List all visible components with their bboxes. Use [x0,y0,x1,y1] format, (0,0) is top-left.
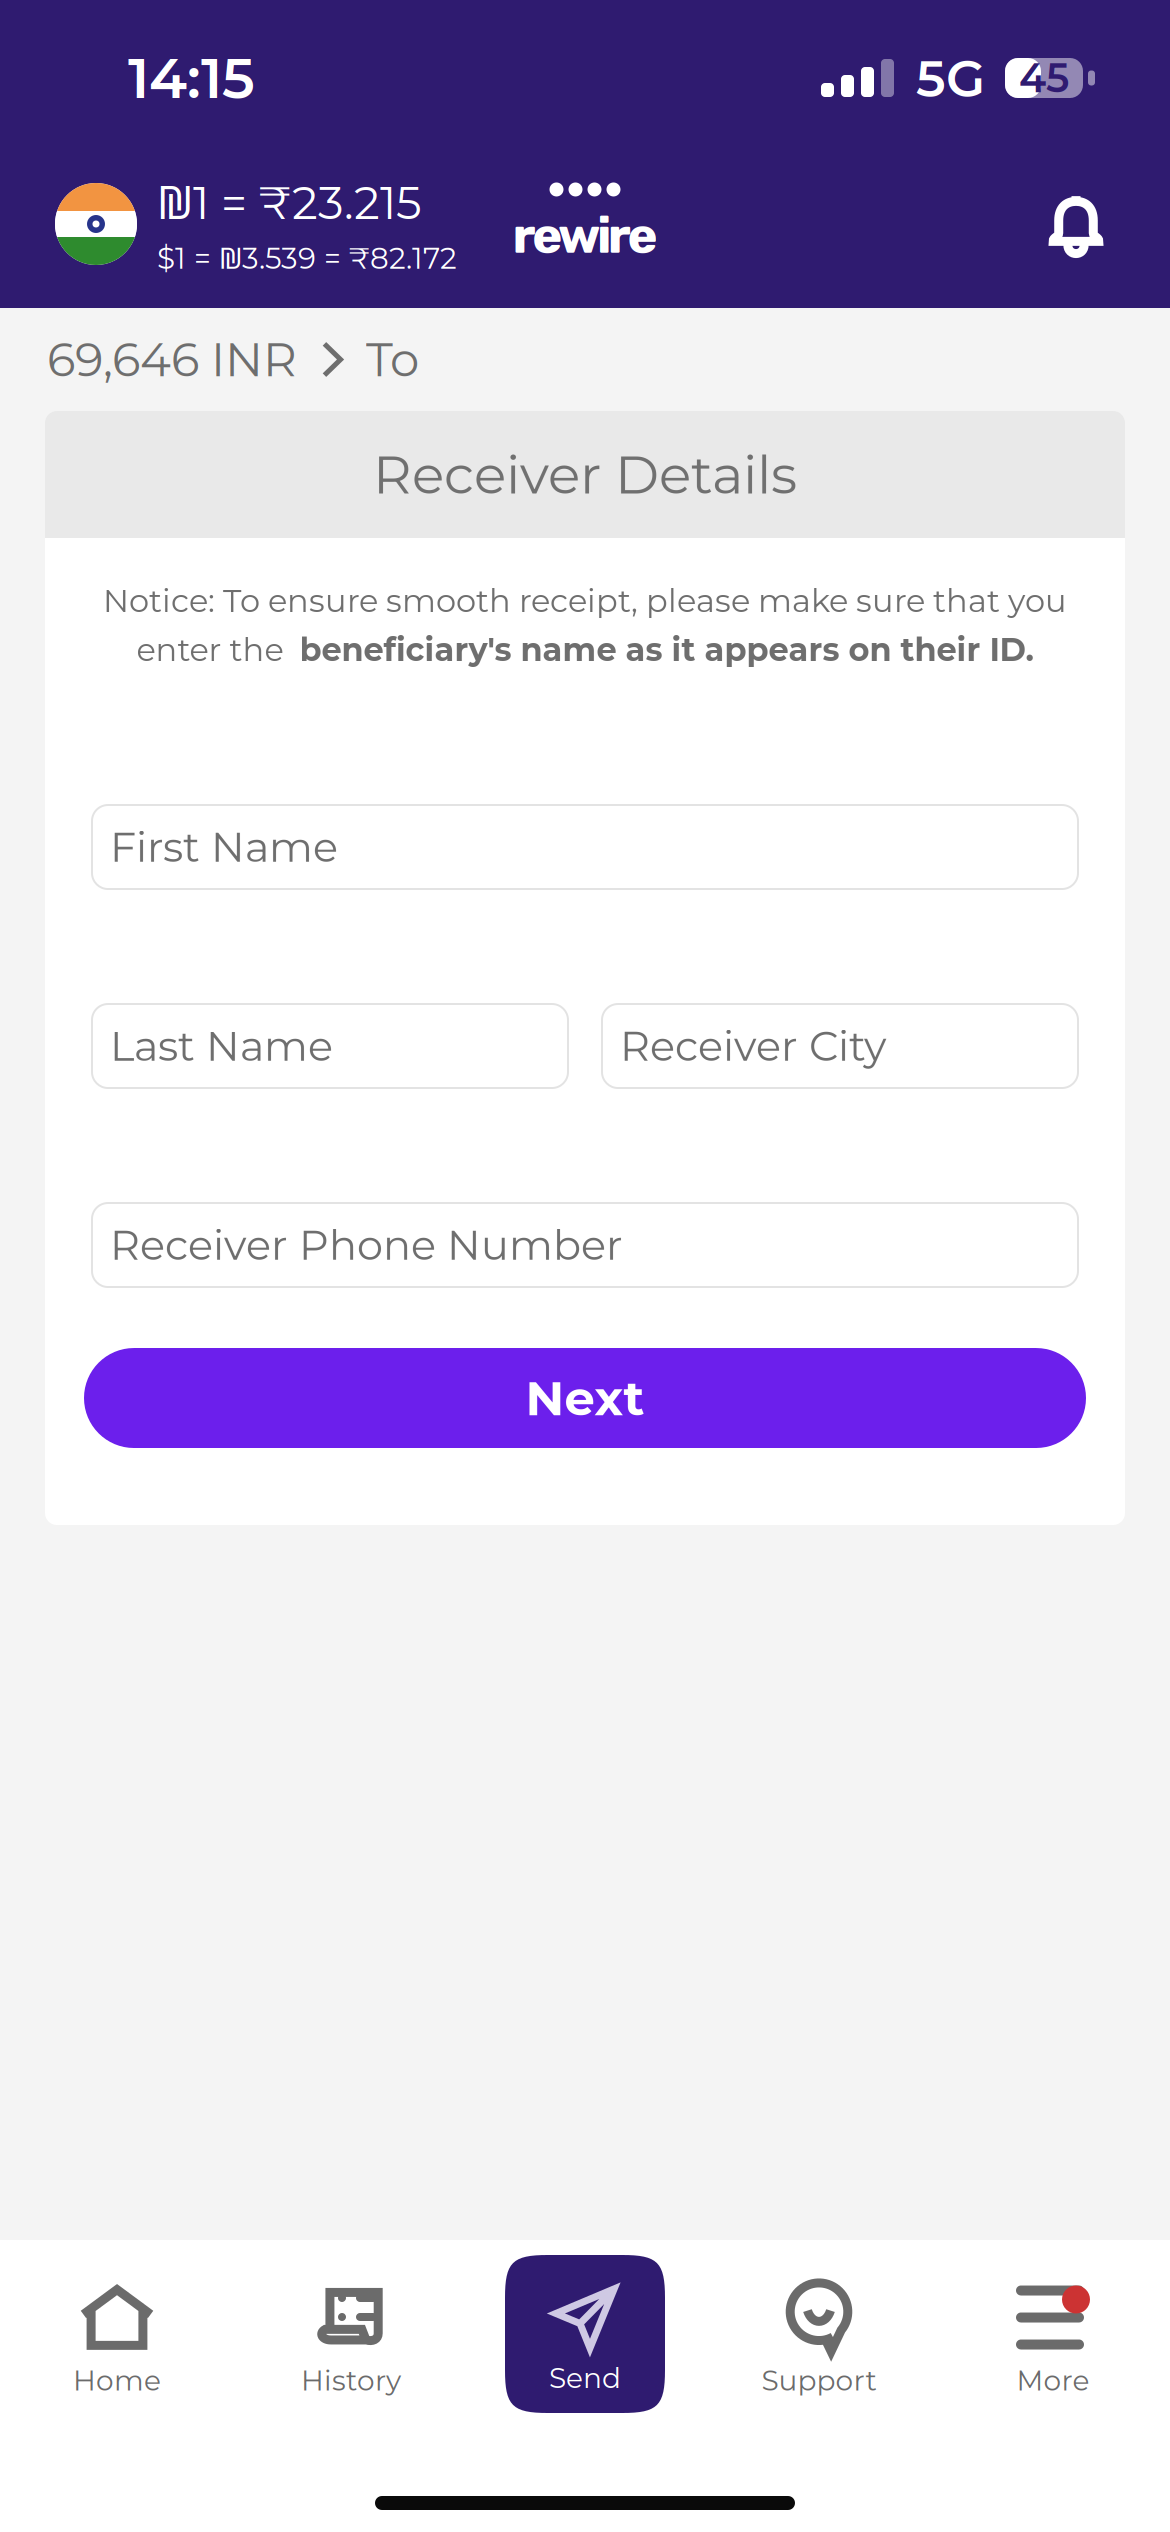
staticText: ₪1 = ₹23.215 [157,171,422,232]
staticText: Support [761,2363,876,2398]
button[interactable]: Notifications [1034,177,1118,271]
staticText: beneficiary's name as it appears on thei… [299,630,1033,669]
staticText: 14:15 [128,44,255,112]
button[interactable]: Receiver City [602,1004,1078,1088]
staticText: Next [525,1369,644,1427]
staticText: Receiver City [620,1021,886,1071]
staticText: 69,646 INR [47,331,297,388]
button[interactable]: More [936,2247,1170,2532]
staticText: More [1016,2363,1089,2398]
staticText: Notice: To ensure smooth receipt, please… [103,581,1067,620]
staticText: $1 = ₪3.539 = ₹82.172 [157,237,457,277]
staticText: Receiver Phone Number [110,1220,623,1270]
button[interactable]: First Name [92,805,1078,889]
staticText: Home [73,2363,161,2398]
staticText: Last Name [110,1021,333,1071]
button[interactable]: Last Name [92,1004,568,1088]
button[interactable]: Receiver Phone Number [92,1203,1078,1287]
staticText: Send [549,2361,621,2395]
button[interactable]: ₪1 = ₹23.215 [55,171,457,277]
staticText: To [366,331,419,388]
button[interactable]: Send [505,2255,665,2413]
button[interactable]: History [234,2247,468,2532]
button[interactable]: Next [84,1348,1086,1448]
staticText: 45 [1019,54,1069,102]
staticText: enter the [136,630,299,669]
button[interactable]: Support [702,2247,936,2532]
staticText: History [301,2363,401,2398]
staticText: rewire [512,205,657,265]
button[interactable]: 69,646 INR [47,331,321,388]
button[interactable]: Home [0,2247,234,2532]
staticText: First Name [110,822,338,872]
staticText: 5G [916,47,985,109]
staticText: Receiver Details [373,442,797,507]
